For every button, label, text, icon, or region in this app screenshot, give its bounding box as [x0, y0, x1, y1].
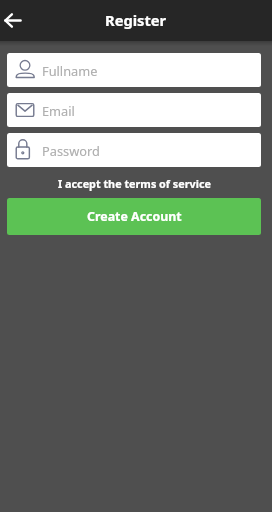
staticText: Fullname	[42, 62, 98, 79]
staticText: Password	[42, 142, 100, 159]
button[interactable]: I accept the terms of service	[7, 172, 261, 194]
button[interactable]: Password	[7, 133, 261, 167]
button[interactable]: Email	[7, 93, 261, 127]
staticText: I accept the terms of service	[58, 176, 211, 191]
button[interactable]: Create Account	[7, 198, 261, 235]
button[interactable]: Fullname	[7, 53, 261, 87]
staticText: Create Account	[87, 208, 182, 225]
staticText: Email	[42, 102, 75, 119]
staticText: Register	[105, 10, 167, 30]
button[interactable]: Back	[0, 0, 32, 41]
